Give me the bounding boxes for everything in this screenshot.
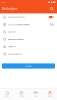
staticText: Política de Privacidade [8,38,24,40]
button[interactable]: Avaliar APP [0,43,57,50]
staticText: Avaliar APP [8,46,16,48]
staticText: LOGIN [25,65,32,67]
button[interactable]: Pesquisar [49,6,55,12]
button[interactable]: Perfil [43,88,57,100]
button[interactable]: Lojas [28,88,43,100]
staticText: Início [5,95,9,97]
staticText: Agenda [18,95,24,97]
staticText: Receber notificações [8,16,25,18]
button[interactable]: Início [0,88,14,100]
staticText: Definições [2,7,17,11]
button[interactable]: Compartilhar APP [0,50,57,58]
button[interactable]: LOGIN [2,63,55,69]
staticText: Lojas [34,95,38,97]
staticText: Perfil [48,95,52,97]
staticText: Sobre nós [8,31,16,33]
button[interactable]: Política de Privacidade [0,36,57,43]
button[interactable]: Mostrar novidades ao iniciar [0,21,57,28]
staticText: Compartilhar APP [8,53,22,55]
staticText: 9:41 [2,1,6,3]
button[interactable]: Sobre nós [0,28,57,36]
button[interactable]: Agenda [14,88,28,100]
button[interactable]: Receber notificações [0,13,57,21]
staticText: Mostrar novidades ao iniciar [8,23,30,26]
